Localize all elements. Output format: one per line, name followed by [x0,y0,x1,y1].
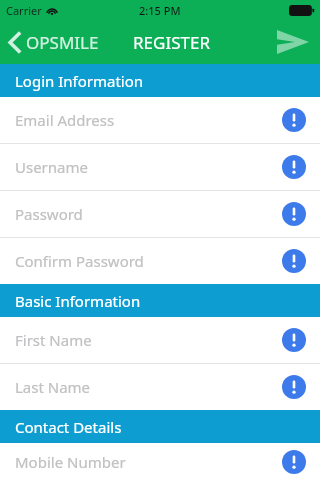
staticText: Username [15,157,88,177]
button[interactable]: Email Address [0,97,320,143]
staticText: OPSMILE [26,31,99,54]
staticText: First Name [15,330,92,350]
staticText: Login Information [15,71,144,91]
staticText: Password [15,204,83,224]
button[interactable]: Username [0,144,320,190]
button[interactable]: Last Name [0,364,320,410]
staticText: Basic Information [15,291,141,311]
staticText: Last Name [15,377,91,397]
button[interactable]: Send [266,20,320,64]
staticText: Confirm Password [15,251,144,271]
staticText: 2:15 PM [139,3,181,18]
button[interactable]: Login Information [0,64,320,97]
button[interactable]: OPSMILE [0,20,109,64]
staticText: Contact Details [15,417,122,437]
staticText: Carrier [6,3,42,18]
button[interactable]: Mobile Number [0,443,320,480]
staticText: Mobile Number [15,452,126,472]
staticText: REGISTER [133,31,210,54]
button[interactable]: First Name [0,317,320,363]
button[interactable]: Password [0,191,320,237]
staticText: Email Address [15,110,115,130]
button[interactable]: Confirm Password [0,238,320,284]
button[interactable]: Contact Details [0,410,320,443]
button[interactable]: Basic Information [0,284,320,317]
